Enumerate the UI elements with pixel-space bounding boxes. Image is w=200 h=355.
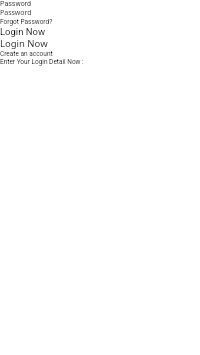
staticText: Enter Your Login Detail Now : (0, 58, 84, 66)
staticText: Create an account (0, 50, 53, 58)
staticText: Password (0, 0, 31, 8)
staticText: Login Now (0, 26, 46, 37)
staticText: Forgot Password? (0, 18, 53, 26)
staticText: Password (0, 8, 32, 18)
staticText: Login Now (0, 37, 48, 50)
